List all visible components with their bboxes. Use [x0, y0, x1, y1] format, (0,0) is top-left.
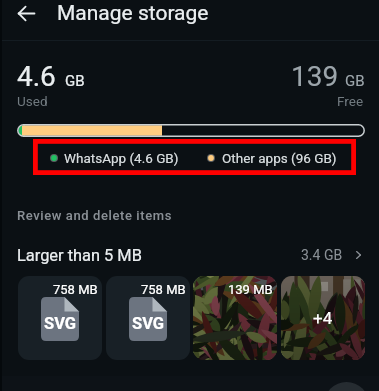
staticText: 758 MB — [141, 282, 186, 297]
staticText: GB — [65, 72, 85, 90]
staticText: Used — [17, 93, 48, 109]
staticText: Free — [337, 93, 364, 109]
button[interactable]: Larger than 5 MB — [0, 239, 379, 271]
staticText: Review and delete items — [17, 208, 172, 223]
button[interactable]: SVG — [18, 276, 102, 360]
staticText: 139 — [291, 60, 339, 93]
button[interactable]: SVG — [106, 276, 190, 360]
staticText: GB — [345, 72, 365, 90]
button[interactable]: Scroll to bottom — [324, 382, 369, 391]
staticText: 3.4 GB — [301, 247, 343, 263]
button[interactable]: +4 — [281, 276, 365, 360]
staticText: SVG — [44, 314, 77, 333]
staticText: Manage storage — [57, 1, 209, 26]
staticText: Larger than 5 MB — [17, 246, 142, 265]
staticText: +4 — [313, 308, 333, 328]
staticText: Other apps (96 GB) — [222, 150, 337, 166]
staticText: WhatsApp (4.6 GB) — [64, 150, 179, 166]
staticText: 4.6 — [17, 60, 56, 93]
staticText: 139 MB — [228, 282, 273, 297]
button[interactable]: 139 MB — [193, 276, 277, 360]
staticText: 758 MB — [53, 282, 98, 297]
staticText: SVG — [132, 314, 165, 333]
button[interactable]: Back — [10, 0, 42, 27]
